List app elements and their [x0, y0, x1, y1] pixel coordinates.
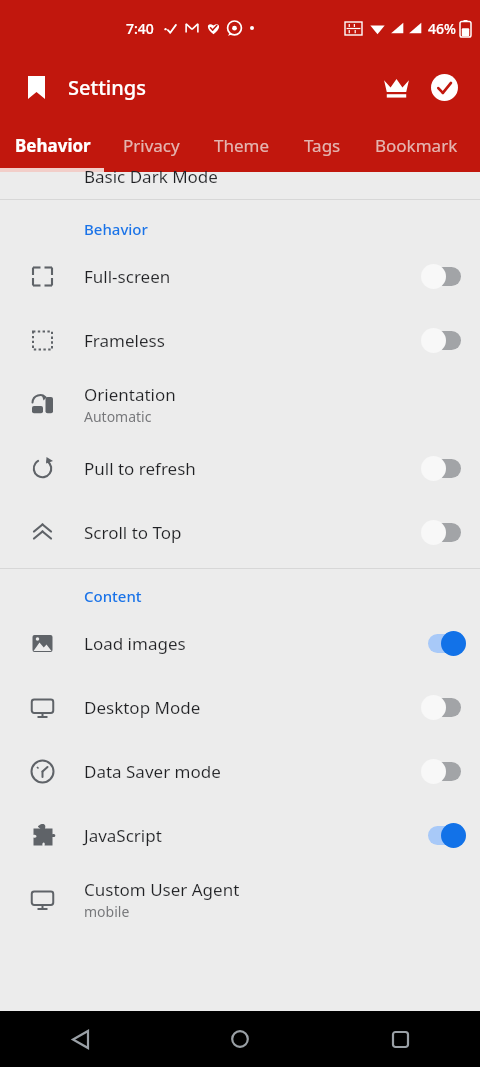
staticText: Behavior: [84, 219, 148, 239]
button[interactable]: Recents: [320, 1011, 480, 1067]
button[interactable]: Tags: [304, 118, 341, 172]
staticText: Pull to refresh: [84, 457, 196, 480]
staticText: Load images: [84, 632, 186, 655]
button[interactable]: Bookmarks: [375, 118, 463, 172]
staticText: Data Saver mode: [84, 760, 221, 783]
button[interactable]: Premium: [372, 63, 420, 111]
button[interactable]: Custom User Agent: [0, 867, 480, 931]
button[interactable]: Full-screen toggle: [406, 244, 480, 308]
button[interactable]: Bookmarks: [14, 65, 58, 109]
button[interactable]: Data Saver mode: [0, 739, 480, 803]
staticText: Full-screen: [84, 265, 171, 288]
button[interactable]: Full-screen: [0, 244, 480, 308]
staticText: mobile: [84, 902, 130, 921]
button[interactable]: Data Saver mode toggle: [406, 739, 480, 803]
staticText: Custom User Agent: [84, 878, 240, 901]
button[interactable]: Load images: [0, 611, 480, 675]
staticText: Tags: [304, 134, 341, 157]
staticText: Desktop Mode: [84, 696, 201, 719]
staticText: Bookmarks: [375, 134, 463, 157]
button[interactable]: Scroll to Top toggle: [406, 500, 480, 564]
button[interactable]: Desktop Mode: [0, 675, 480, 739]
button[interactable]: JavaScript: [0, 803, 480, 867]
button[interactable]: JavaScript toggle: [406, 803, 480, 867]
button[interactable]: Back: [0, 1011, 160, 1067]
staticText: Scroll to Top: [84, 521, 182, 544]
staticText: Automatic: [84, 407, 152, 426]
staticText: Behavior: [15, 134, 91, 157]
button[interactable]: Behavior: [15, 118, 91, 172]
staticText: JavaScript: [84, 824, 162, 847]
button[interactable]: Orientation: [0, 372, 480, 436]
staticText: Privacy: [123, 134, 180, 157]
staticText: Frameless: [84, 329, 165, 352]
button[interactable]: Frameless: [0, 308, 480, 372]
staticText: 7:40: [126, 19, 154, 38]
staticText: 46%: [428, 19, 456, 38]
button[interactable]: Home: [160, 1011, 320, 1067]
staticText: Orientation: [84, 383, 176, 406]
button[interactable]: Privacy: [123, 118, 180, 172]
button[interactable]: Pull to refresh: [0, 436, 480, 500]
button[interactable]: Desktop Mode toggle: [406, 675, 480, 739]
button[interactable]: Theme: [214, 118, 270, 172]
staticText: Settings: [68, 74, 146, 101]
button[interactable]: Load images toggle: [406, 611, 480, 675]
button[interactable]: Scroll to Top: [0, 500, 480, 564]
button[interactable]: Frameless toggle: [406, 308, 480, 372]
staticText: Theme: [214, 134, 270, 157]
button[interactable]: Pull to refresh toggle: [406, 436, 480, 500]
button[interactable]: Confirm: [420, 63, 468, 111]
staticText: Basic Dark Mode: [84, 165, 218, 188]
staticText: Content: [84, 586, 142, 606]
